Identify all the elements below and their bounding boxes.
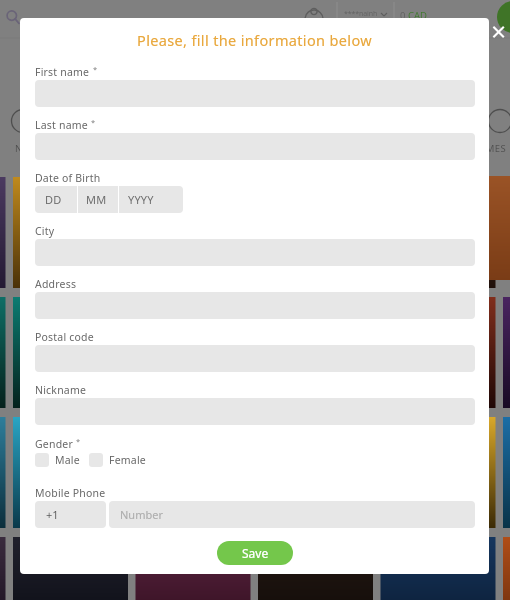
staticText: * xyxy=(91,117,96,127)
staticText: Save xyxy=(242,545,269,561)
staticText: Number xyxy=(120,507,163,522)
button[interactable]: Female xyxy=(89,453,146,467)
staticText: +1 xyxy=(46,507,59,522)
staticText: Address xyxy=(35,277,77,291)
staticText: MM xyxy=(86,192,107,207)
staticText: Date of Birth xyxy=(35,171,101,185)
staticText: DD xyxy=(45,192,62,207)
staticText: GAMES xyxy=(472,142,507,155)
button[interactable]: Number xyxy=(109,501,475,528)
staticText: Nickname xyxy=(35,383,87,397)
button[interactable]: Close dialog xyxy=(489,22,509,42)
staticText: * xyxy=(76,436,81,446)
staticText: YYYY xyxy=(128,192,154,207)
button[interactable]: YYYY xyxy=(119,186,183,213)
button[interactable]: 0 xyxy=(400,9,428,22)
staticText: First name xyxy=(35,65,90,79)
staticText: Please, fill the information below xyxy=(20,30,489,50)
staticText: Mobile Phone xyxy=(35,486,106,500)
button[interactable]: ****nainhn50@gm xyxy=(344,9,381,20)
staticText: City xyxy=(35,224,55,238)
staticText: Gender xyxy=(35,437,73,451)
staticText: NEW xyxy=(15,142,38,155)
staticText: * xyxy=(93,64,98,74)
staticText: Male xyxy=(55,453,80,467)
button[interactable]: DD xyxy=(35,186,77,213)
button[interactable]: Save xyxy=(217,541,293,565)
staticText: ****nainhn50@gm xyxy=(344,9,381,19)
button[interactable]: MM xyxy=(78,186,118,213)
staticText: Postal code xyxy=(35,330,94,344)
staticText: 0 xyxy=(400,9,408,22)
staticText: Female xyxy=(109,453,146,467)
button[interactable]: +1 xyxy=(35,501,106,528)
staticText: Last name xyxy=(35,118,88,132)
staticText: CAD xyxy=(408,9,428,22)
button[interactable]: Male xyxy=(35,453,80,467)
